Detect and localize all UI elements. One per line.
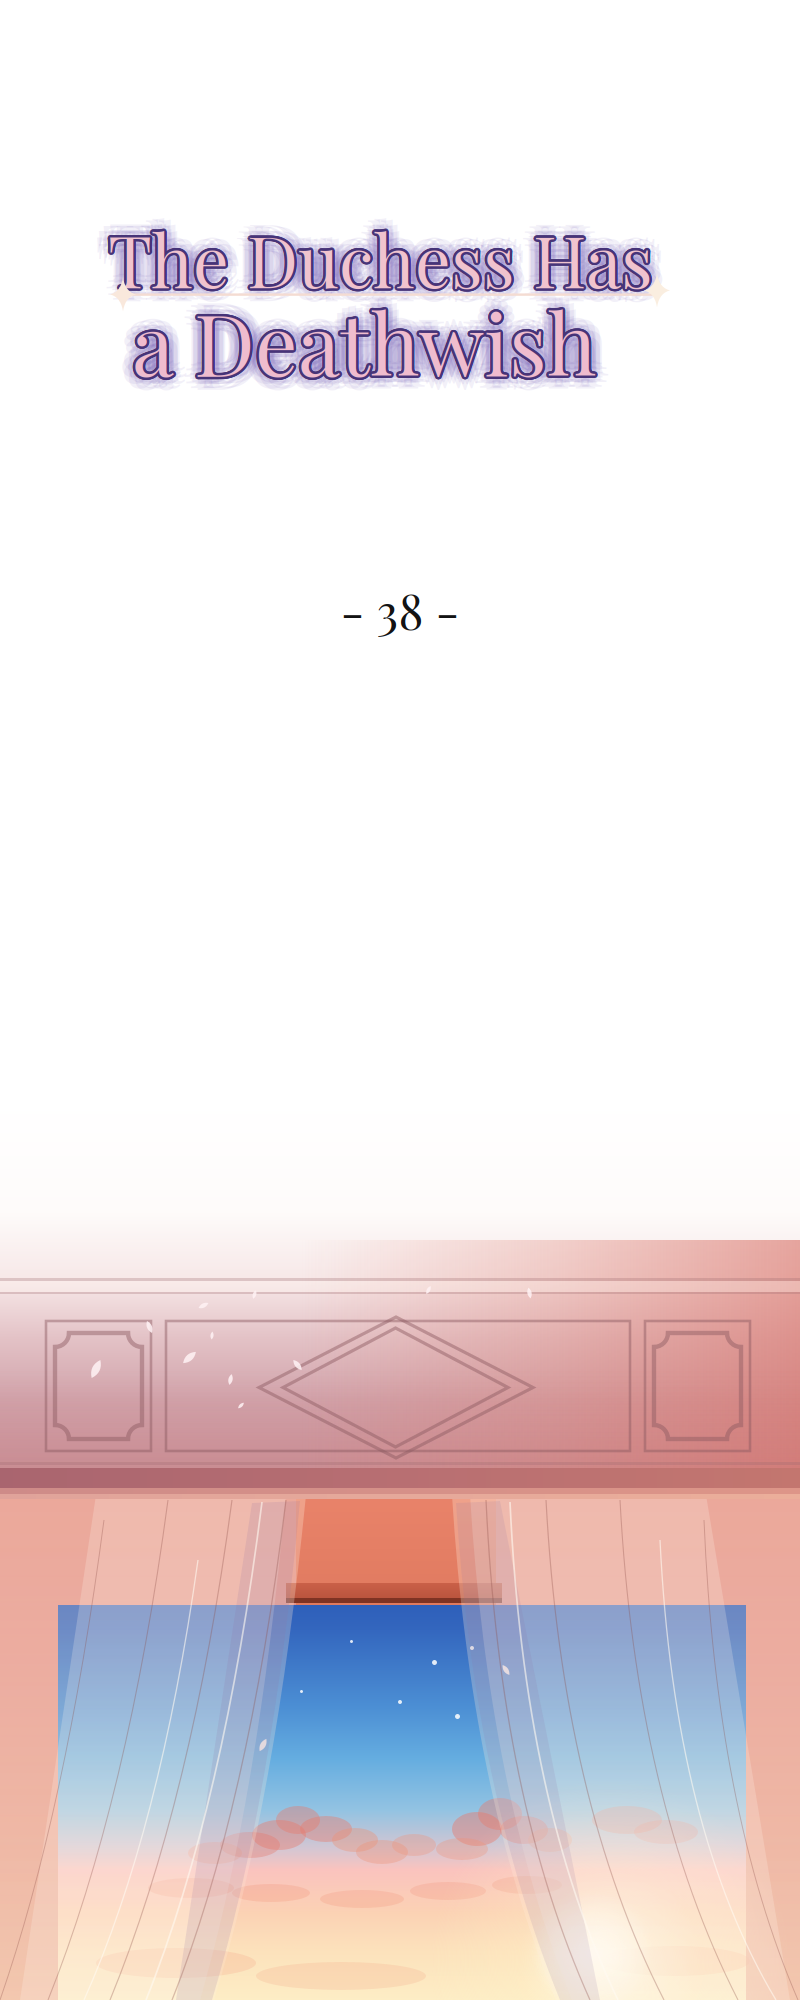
staticText: a Deathwish (121, 279, 585, 391)
staticText: a Deathwish (133, 284, 597, 396)
staticText: a Deathwish (130, 287, 594, 399)
staticText: a Deathwish (131, 288, 595, 400)
staticText: The Duchess Has (110, 211, 655, 305)
staticText: a Deathwish (137, 291, 601, 403)
staticText: The Duchess Has (97, 218, 642, 312)
staticText: a Deathwish (132, 283, 596, 395)
staticText: a Deathwish (134, 284, 598, 396)
staticText: a Deathwish (134, 287, 598, 399)
staticText: The Duchess Has (115, 213, 660, 307)
staticText: The Duchess Has (119, 205, 664, 299)
staticText: The Duchess Has (103, 217, 648, 311)
staticText: The Duchess Has (109, 213, 654, 308)
staticText: a Deathwish (125, 284, 589, 396)
staticText: a Deathwish (134, 293, 598, 405)
staticText: The Duchess Has (103, 206, 648, 300)
staticText: a Deathwish (134, 286, 598, 398)
staticText: The Duchess Has (107, 209, 652, 304)
staticText: The Duchess Has (106, 211, 651, 305)
staticText: The Duchess Has (97, 205, 642, 299)
staticText: The Duchess Has (106, 213, 651, 307)
staticText: a Deathwish (130, 293, 594, 405)
staticText: a Deathwish (130, 286, 594, 398)
staticText: a Deathwish (143, 279, 607, 391)
staticText: The Duchess Has (108, 198, 653, 293)
staticText: a Deathwish (125, 274, 589, 386)
staticText: a Deathwish (134, 278, 598, 390)
staticText: The Duchess Has (106, 212, 651, 306)
staticText: a Deathwish (130, 285, 594, 397)
staticText: a Deathwish (134, 285, 598, 397)
staticText: The Duchess Has (110, 212, 655, 306)
staticText: The Duchess Has (106, 211, 651, 306)
staticText: The Duchess Has (110, 210, 655, 304)
staticText: a Deathwish (132, 299, 596, 411)
staticText: The Duchess Has (113, 206, 658, 300)
staticText: a Deathwish (130, 278, 594, 390)
staticText: The Duchess Has (106, 219, 651, 313)
staticText: The Duchess Has (101, 223, 646, 317)
staticText: a Deathwish (127, 280, 591, 392)
staticText: The Duchess Has (101, 213, 646, 308)
staticText: a Deathwish (143, 292, 607, 404)
staticText: a Deathwish (132, 288, 596, 400)
staticText: The Duchess Has (114, 200, 659, 294)
staticText: The Duchess Has (107, 213, 652, 308)
staticText: The Duchess Has (101, 209, 646, 304)
staticText: The Duchess Has (109, 209, 654, 303)
staticText: a Deathwish (125, 297, 589, 409)
staticText: a Deathwish (133, 283, 597, 395)
staticText: The Duchess Has (110, 213, 655, 307)
staticText: a Deathwish (131, 283, 595, 395)
staticText: The Duchess Has (119, 218, 664, 312)
staticText: a Deathwish (138, 297, 602, 409)
staticText: The Duchess Has (106, 210, 651, 304)
staticText: The Duchess Has (108, 209, 653, 303)
staticText: a Deathwish (127, 291, 591, 403)
staticText: The Duchess Has (108, 224, 653, 319)
staticText: The Duchess Has (108, 211, 653, 306)
staticText: The Duchess Has (110, 204, 655, 298)
staticText: a Deathwish (119, 286, 583, 398)
staticText: a Deathwish (125, 288, 589, 400)
staticText: The Duchess Has (107, 209, 652, 303)
staticText: a Deathwish (145, 286, 609, 398)
staticText: a Deathwish (133, 288, 597, 400)
staticText: a Deathwish (132, 286, 596, 398)
staticText: a Deathwish (133, 288, 597, 400)
staticText: The Duchess Has (109, 209, 654, 304)
staticText: a Deathwish (130, 286, 594, 398)
staticText: a Deathwish (138, 274, 602, 386)
staticText: a Deathwish (139, 287, 603, 399)
staticText: The Duchess Has (110, 211, 655, 306)
staticText: a Deathwish (132, 273, 596, 385)
staticText: a Deathwish (130, 284, 594, 396)
staticText: a Deathwish (137, 280, 601, 392)
staticText: The Duchess Has (108, 214, 653, 308)
staticText: The Duchess Has (115, 209, 660, 304)
staticText: a Deathwish (131, 284, 595, 396)
staticText: a Deathwish (121, 292, 585, 404)
staticText: The Duchess Has (107, 214, 652, 308)
staticText: a Deathwish (131, 288, 595, 400)
staticText: a Deathwish (134, 286, 598, 398)
staticText: The Duchess Has (110, 219, 655, 313)
staticText: a Deathwish (139, 284, 603, 396)
staticText: - 38 - (340, 578, 459, 642)
staticText: The Duchess Has (113, 217, 658, 311)
staticText: The Duchess Has (106, 204, 651, 298)
staticText: The Duchess Has (109, 214, 654, 308)
staticText: The Duchess Has (101, 200, 646, 294)
staticText: The Duchess Has (121, 211, 666, 306)
staticText: The Duchess Has (95, 211, 640, 306)
staticText: The Duchess Has (114, 223, 659, 317)
